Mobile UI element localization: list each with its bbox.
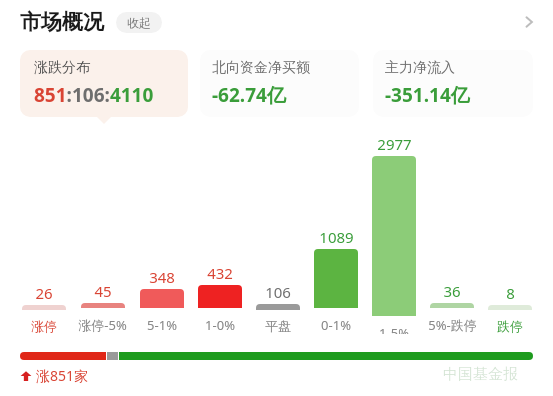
staticText: 1-5%: [379, 324, 409, 334]
staticText: 851:106:4110: [34, 82, 154, 108]
button[interactable]: 26: [14, 134, 73, 334]
staticText: 涨851家: [36, 366, 89, 385]
button[interactable]: 主力净流入: [373, 50, 533, 117]
staticText: 8: [506, 283, 515, 303]
button[interactable]: 1089: [307, 134, 365, 334]
button[interactable]: 432: [191, 134, 249, 334]
button[interactable]: 106: [249, 134, 307, 334]
staticText: 中国基金报: [443, 365, 518, 384]
button[interactable]: 8: [481, 134, 539, 334]
staticText: 5-1%: [147, 316, 177, 334]
staticText: 432: [207, 263, 233, 283]
staticText: 106: [265, 282, 291, 302]
staticText: 36: [443, 281, 461, 301]
button[interactable]: 涨跌分布: [20, 50, 188, 117]
staticText: 北向资金净买额: [212, 59, 310, 77]
staticText: 平盘: [265, 318, 291, 334]
staticText: 市场概况: [20, 9, 104, 35]
staticText: -62.74亿: [212, 82, 286, 108]
button[interactable]: 2977: [365, 134, 423, 334]
staticText: 45: [94, 281, 112, 301]
staticText: 348: [149, 267, 175, 287]
staticText: 涨跌分布: [34, 59, 90, 77]
staticText: 跌停: [497, 318, 523, 334]
staticText: 26: [35, 283, 53, 303]
staticText: 2977: [377, 134, 412, 154]
button[interactable]: 北向资金净买额: [200, 50, 359, 117]
staticText: 涨停: [31, 318, 57, 334]
button[interactable]: 36: [423, 134, 481, 334]
staticText: 1-0%: [205, 316, 235, 334]
button[interactable]: 更多: [509, 2, 549, 42]
staticText: 收起: [127, 15, 151, 30]
staticText: 5%-跌停: [428, 316, 477, 334]
button[interactable]: 45: [73, 134, 132, 334]
staticText: -351.14亿: [385, 82, 470, 108]
staticText: 0-1%: [321, 316, 351, 334]
staticText: 1089: [319, 227, 354, 247]
button[interactable]: [20, 352, 533, 360]
button[interactable]: 348: [132, 134, 191, 334]
button[interactable]: 收起: [116, 12, 162, 33]
staticText: 涨停-5%: [78, 316, 127, 334]
staticText: 主力净流入: [385, 59, 455, 77]
